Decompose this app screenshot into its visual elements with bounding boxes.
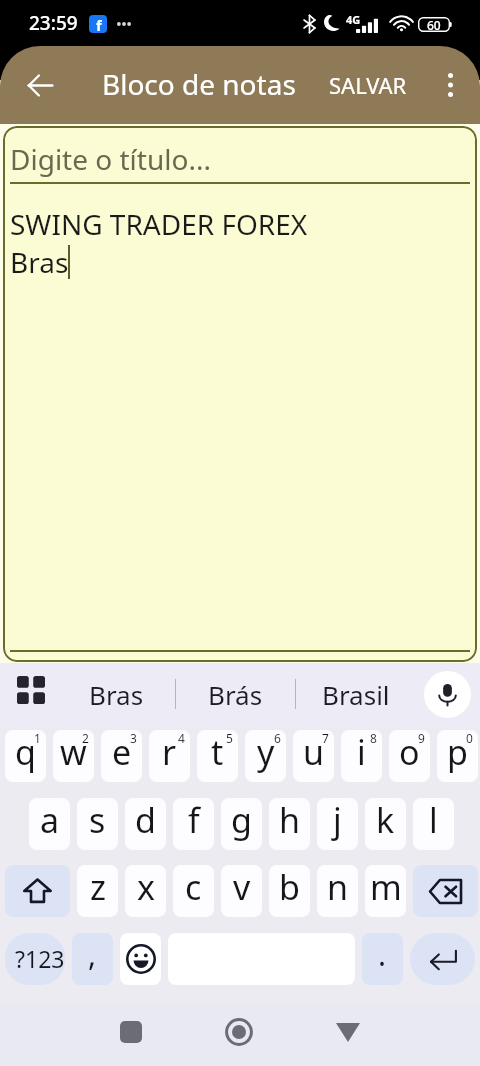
staticText: j [333,798,342,843]
staticText: 7 [322,730,329,746]
button[interactable]: . [362,933,403,985]
button[interactable]: t [197,730,238,782]
staticText: t [211,730,224,775]
button[interactable]: i [341,730,382,782]
button[interactable]: Brasil [296,662,415,726]
button[interactable]: Back [324,1008,372,1056]
button[interactable]: x [125,865,166,917]
button[interactable]: a [29,798,70,850]
button[interactable]: Back [16,61,64,109]
staticText: e [112,730,132,775]
button[interactable]: l [413,798,454,850]
staticText: u [303,730,325,775]
staticText: x [137,865,155,910]
staticText: n [327,865,349,910]
staticText: 9 [418,730,425,746]
button[interactable]: k [365,798,406,850]
staticText: 2 [82,730,89,746]
staticText: d [135,798,156,843]
staticText: ?123 [15,943,65,974]
button[interactable]: j [317,798,358,850]
staticText: l [429,798,438,843]
staticText: 3 [130,730,137,746]
staticText: q [15,730,36,775]
staticText: w [60,730,87,775]
staticText: i [357,730,366,775]
staticText: 8 [370,730,377,746]
staticText: Brás [208,677,263,712]
staticText: 23:59 [29,10,78,36]
button[interactable]: Emoji [120,933,161,985]
staticText: . [378,934,387,975]
staticText: f [188,798,200,843]
staticText: z [90,865,106,910]
staticText: o [399,730,420,775]
button[interactable]: h [269,798,310,850]
button[interactable]: SALVAR [321,62,415,108]
button[interactable]: y [245,730,286,782]
staticText: k [376,798,395,843]
staticText: 0 [466,730,473,746]
button[interactable]: o [389,730,430,782]
staticText: a [40,798,60,843]
staticText: c [185,865,202,910]
staticText: 4 [178,730,185,746]
staticText: f [96,15,102,33]
button[interactable]: n [317,865,358,917]
button[interactable]: s [77,798,118,850]
button[interactable]: , [72,933,113,985]
staticText: Brasil [322,677,390,712]
staticText: s [89,798,106,843]
button[interactable]: Brás [176,662,295,726]
button[interactable]: f [173,798,214,850]
staticText: g [231,798,252,843]
button[interactable]: r [149,730,190,782]
button[interactable]: Bras [57,662,175,726]
button[interactable]: g [221,798,262,850]
button[interactable]: ?123 [5,933,65,985]
staticText: v [233,865,251,910]
button[interactable]: Home [215,1008,263,1056]
button[interactable]: e [101,730,142,782]
button[interactable]: q [5,730,46,782]
staticText: 5 [226,730,233,746]
button[interactable]: Shift [5,865,70,917]
button[interactable]: Backspace [413,865,478,917]
staticText: b [279,865,300,910]
staticText: 4G [346,12,361,27]
staticText: Bloco de notas [102,65,296,103]
staticText: m [370,865,402,910]
button[interactable]: z [77,865,118,917]
staticText: Digite o título... [10,140,211,178]
button[interactable]: m [365,865,406,917]
button[interactable]: u [293,730,334,782]
staticText: y [257,730,275,775]
button[interactable]: v [221,865,262,917]
button[interactable]: p [437,730,478,782]
staticText: 6 [274,730,281,746]
button[interactable]: b [269,865,310,917]
staticText: h [279,798,301,843]
staticText: , [88,934,97,975]
staticText: Bras [89,677,144,712]
button[interactable]: w [53,730,94,782]
button[interactable]: More options [426,61,474,109]
button[interactable]: Voice input [424,671,471,718]
button[interactable]: Keyboard settings [6,665,56,715]
button[interactable]: Enter [410,933,475,985]
button[interactable]: Recents [107,1008,155,1056]
staticText: r [162,730,177,775]
button[interactable]: c [173,865,214,917]
staticText: 1 [34,730,41,746]
staticText: Bras [10,243,69,281]
staticText: p [447,730,468,775]
staticText: SALVAR [329,70,407,100]
staticText: SWING TRADER FOREX [10,205,308,243]
staticText: 60 [427,17,441,32]
button[interactable]: d [125,798,166,850]
